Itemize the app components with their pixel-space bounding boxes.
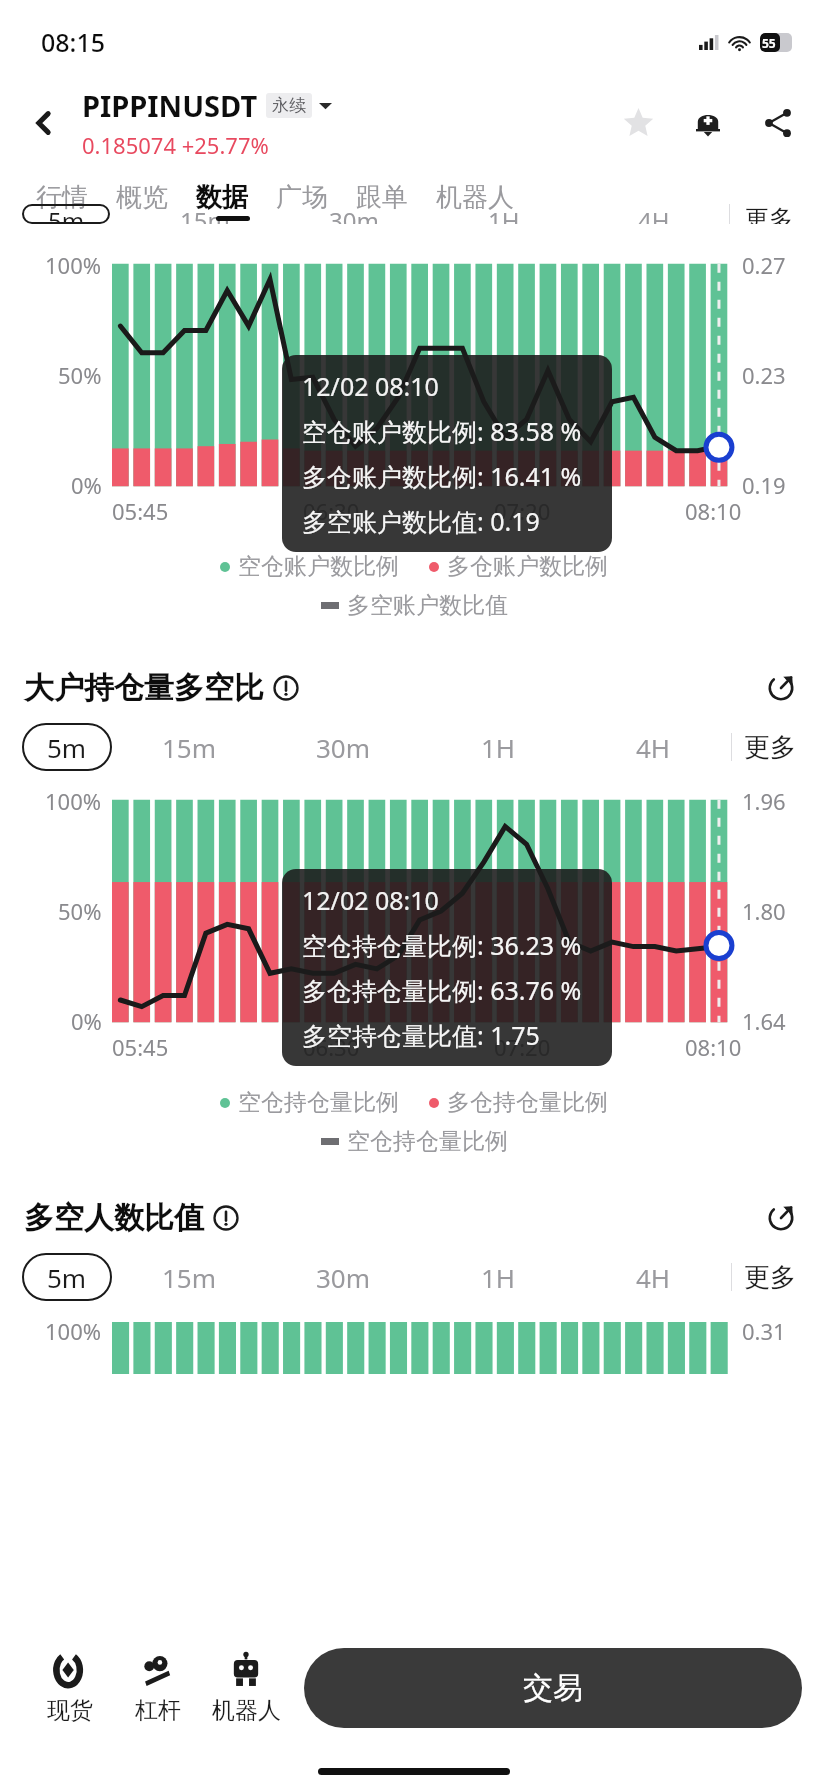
button[interactable]: 30m: [266, 1252, 421, 1302]
staticText: 0.31: [742, 1316, 786, 1346]
staticText: 空仓持仓量比例: 36.23 %: [302, 928, 582, 962]
staticText: 0%: [71, 470, 102, 500]
staticText: 空仓账户数比例: 83.58 %: [302, 414, 582, 448]
staticText: 多仓账户数比例: [447, 552, 608, 581]
staticText: 交易: [523, 1669, 583, 1707]
button[interactable]: 5m: [22, 204, 110, 224]
staticText: 更多: [744, 731, 796, 764]
staticText: 30m: [316, 1260, 371, 1295]
button[interactable]: 15m: [112, 722, 266, 772]
button[interactable]: 15m: [112, 1252, 266, 1302]
staticText: 5m: [48, 204, 85, 224]
staticText: 0.185074 +25.77%: [82, 130, 269, 160]
staticText: 4H: [638, 204, 670, 224]
button[interactable]: 机器人: [422, 175, 528, 220]
staticText: 更多: [744, 1261, 796, 1294]
button[interactable]: Back: [20, 99, 68, 147]
staticText: 0.23: [742, 360, 786, 390]
staticText: 5m: [47, 1260, 87, 1295]
staticText: 06:30: [303, 1032, 360, 1062]
staticText: 08:10: [685, 496, 742, 526]
staticText: 1H: [488, 204, 520, 224]
button[interactable]: 广场: [262, 175, 342, 220]
staticText: 多空账户数比值: 0.19: [302, 504, 540, 538]
staticText: PIPPINUSDT: [82, 86, 258, 125]
staticText: 1.80: [742, 896, 786, 926]
button[interactable]: 30m: [279, 204, 429, 224]
button[interactable]: 4H: [576, 722, 731, 772]
staticText: 空仓账户数比例: [238, 552, 399, 581]
button[interactable]: 15m: [130, 204, 279, 224]
staticText: 跟单: [356, 181, 408, 214]
staticText: 多仓账户数比例: 16.41 %: [302, 459, 582, 493]
staticText: 4H: [636, 1260, 671, 1295]
button[interactable]: Price alert: [680, 95, 736, 151]
staticText: 1.96: [742, 786, 786, 816]
staticText: 永续: [272, 95, 306, 116]
staticText: 数据: [196, 181, 248, 214]
staticText: 08:15: [41, 25, 106, 59]
staticText: 多空持仓量比值: 1.75: [302, 1018, 540, 1052]
staticText: 15m: [162, 1260, 217, 1295]
staticText: 0.27: [742, 250, 786, 280]
button[interactable]: 4H: [576, 1252, 731, 1302]
button[interactable]: 1H: [421, 722, 576, 772]
staticText: 多仓持仓量比例: [447, 1088, 608, 1117]
button[interactable]: 5m: [22, 723, 112, 771]
staticText: 大户持仓量多空比: [24, 669, 264, 707]
staticText: 05:45: [112, 496, 169, 526]
button[interactable]: 机器人: [202, 1651, 290, 1725]
staticText: 100%: [45, 1316, 102, 1346]
staticText: 100%: [45, 786, 102, 816]
staticText: 机器人: [436, 181, 514, 214]
button[interactable]: 4H: [579, 204, 729, 224]
staticText: 0.19: [742, 470, 786, 500]
staticText: 50%: [58, 360, 102, 390]
button[interactable]: 概览: [102, 175, 182, 220]
button[interactable]: 30m: [266, 722, 421, 772]
button[interactable]: 行情: [22, 175, 102, 220]
button[interactable]: 1H: [421, 1252, 576, 1302]
staticText: 5m: [47, 730, 87, 765]
staticText: 30m: [329, 204, 379, 224]
button[interactable]: 杠杆: [114, 1651, 202, 1725]
staticText: 08:10: [685, 1032, 742, 1062]
staticText: 多仓持仓量比例: 63.76 %: [302, 973, 582, 1007]
button[interactable]: Open detail: [758, 1196, 804, 1240]
staticText: 更多: [745, 204, 793, 224]
button[interactable]: 1H: [429, 204, 579, 224]
staticText: 15m: [162, 730, 217, 765]
button[interactable]: 更多: [732, 722, 808, 772]
staticText: 多空账户数比值: [347, 591, 508, 620]
staticText: 机器人: [212, 1696, 281, 1725]
staticText: 空仓持仓量比例: [238, 1088, 399, 1117]
button[interactable]: Favorite: [610, 95, 666, 151]
staticText: 55: [762, 35, 776, 51]
staticText: 1H: [481, 1260, 516, 1295]
button[interactable]: 更多: [730, 204, 808, 224]
staticText: 行情: [36, 181, 88, 214]
button[interactable]: Open detail: [758, 666, 804, 710]
staticText: 07:20: [494, 1032, 551, 1062]
staticText: 现货: [47, 1696, 93, 1725]
button[interactable]: 5m: [22, 1253, 112, 1301]
staticText: 07:20: [494, 496, 551, 526]
staticText: 100%: [45, 250, 102, 280]
button[interactable]: 数据: [182, 175, 262, 220]
button[interactable]: 现货: [26, 1651, 114, 1725]
staticText: 1.64: [742, 1006, 786, 1036]
staticText: 概览: [116, 181, 168, 214]
staticText: 05:45: [112, 1032, 169, 1062]
staticText: 12/02 08:10: [302, 883, 439, 917]
staticText: 4H: [636, 730, 671, 765]
staticText: 多空人数比值: [24, 1199, 204, 1237]
button[interactable]: 更多: [732, 1252, 808, 1302]
staticText: 12/02 08:10: [302, 369, 439, 403]
button[interactable]: 交易: [304, 1648, 802, 1728]
button[interactable]: 跟单: [342, 175, 422, 220]
button[interactable]: Share: [750, 95, 806, 151]
staticText: 广场: [276, 181, 328, 214]
staticText: 06:30: [303, 496, 360, 526]
staticText: 空仓持仓量比例: [347, 1127, 508, 1156]
staticText: 0%: [71, 1006, 102, 1036]
